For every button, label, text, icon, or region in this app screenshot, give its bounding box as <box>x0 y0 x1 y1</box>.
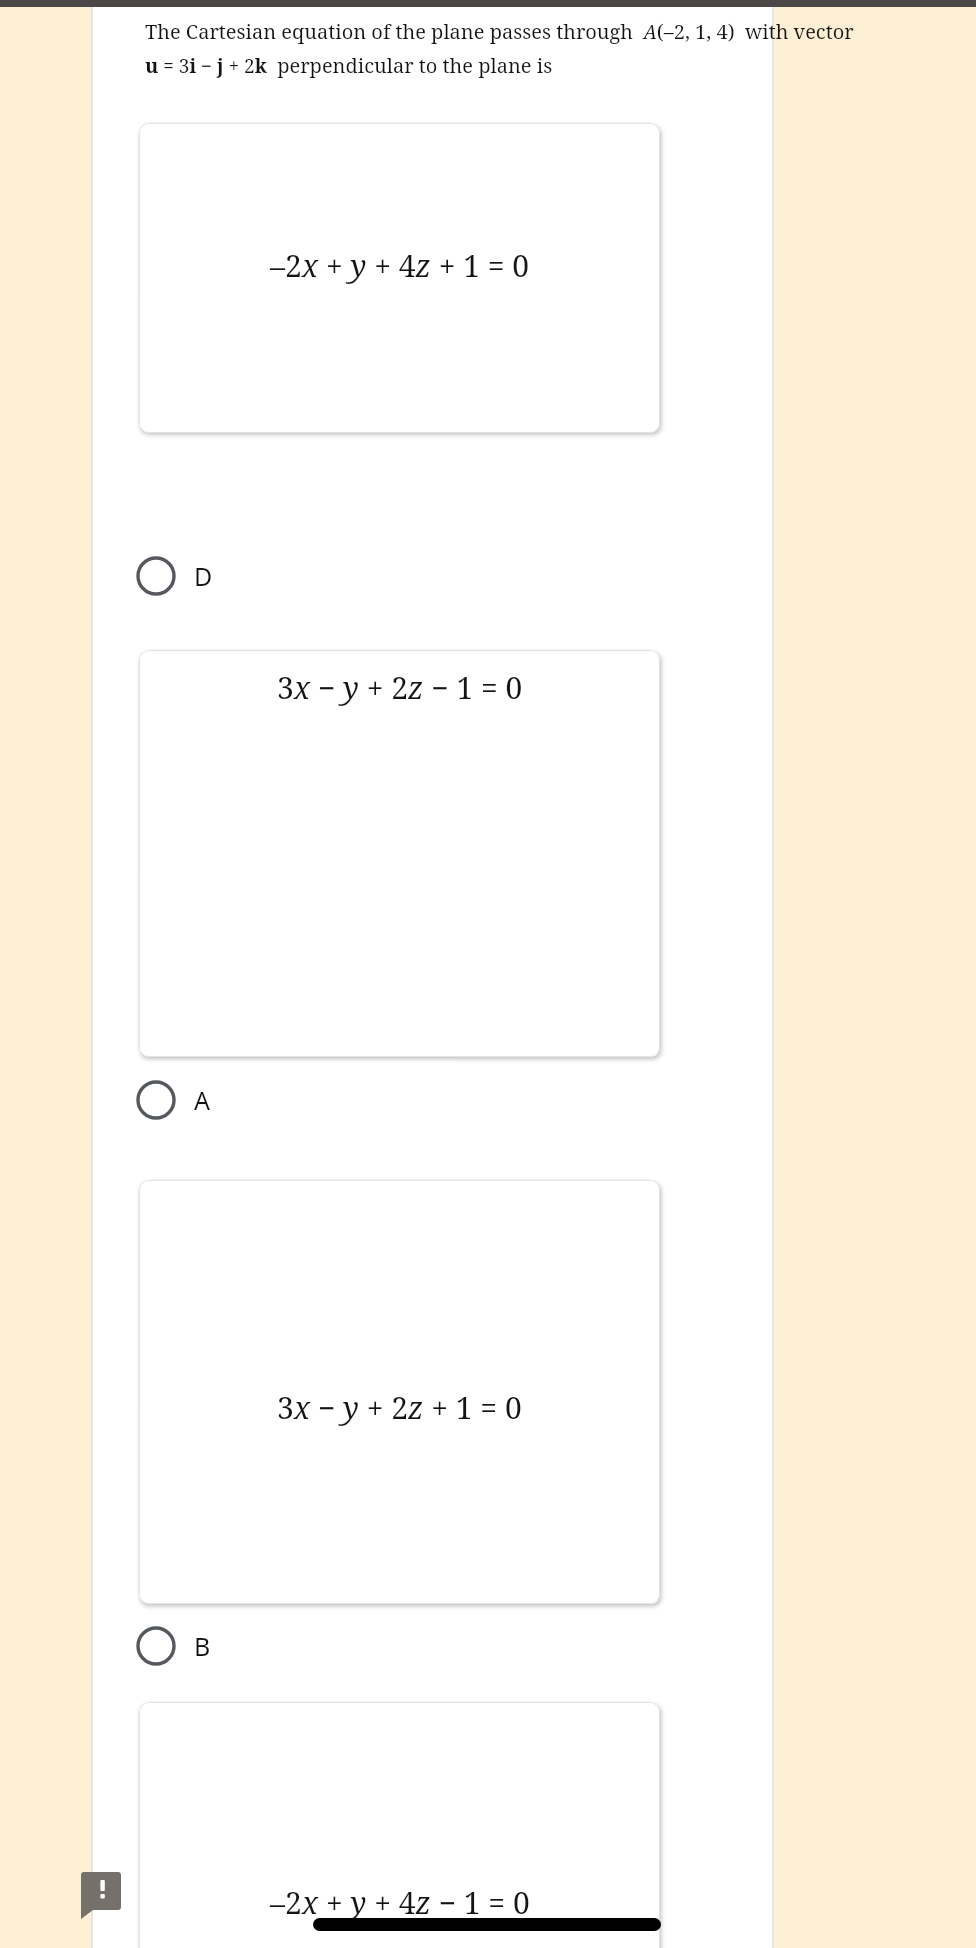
staticText: B <box>194 1629 211 1663</box>
staticText: u = 3i − j + 2k perpendicular to the pla… <box>145 52 553 79</box>
button[interactable]: A <box>130 1074 310 1126</box>
button[interactable] <box>139 123 660 433</box>
staticText: 3x − y + 2z + 1 = 0 <box>277 1387 522 1428</box>
staticText: –2x + y + 4z − 1 = 0 <box>270 1882 530 1923</box>
staticText: A <box>194 1083 210 1117</box>
staticText: The Cartesian equation of the plane pass… <box>145 18 854 45</box>
button[interactable]: D <box>130 550 310 602</box>
staticText: 3x − y + 2z − 1 = 0 <box>277 667 523 708</box>
button[interactable] <box>139 650 660 1057</box>
button[interactable] <box>139 1180 660 1604</box>
button[interactable]: B <box>130 1620 310 1672</box>
staticText: D <box>194 559 213 593</box>
button[interactable]: Information <box>78 1868 124 1920</box>
staticText: –2x + y + 4z + 1 = 0 <box>270 245 530 286</box>
button[interactable] <box>139 1702 660 1948</box>
